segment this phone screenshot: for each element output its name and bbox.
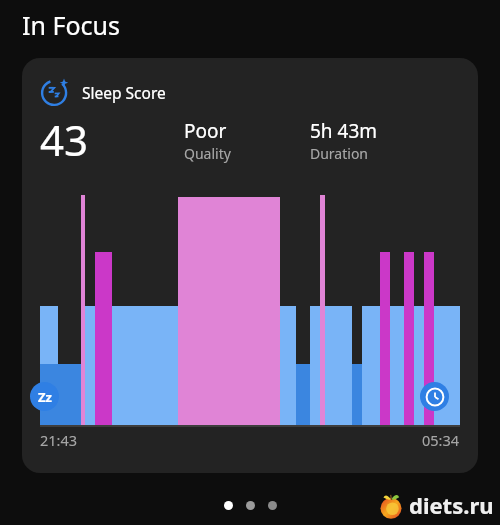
staticText: Quality — [184, 144, 231, 163]
staticText: 43 — [40, 111, 89, 168]
staticText: Duration — [310, 144, 369, 163]
button[interactable]: Sleep start time — [30, 382, 59, 411]
button[interactable] — [268, 501, 277, 510]
button[interactable] — [246, 501, 255, 510]
staticText: Sleep Score — [82, 82, 166, 103]
staticText: 05:34 — [422, 430, 460, 450]
staticText: 21:43 — [40, 430, 78, 450]
staticText: 5h 43m — [310, 118, 378, 144]
staticText: diets.ru — [409, 490, 494, 520]
button[interactable] — [224, 501, 233, 510]
button[interactable]: Wake up time — [420, 382, 449, 411]
staticText: Zz — [38, 388, 52, 406]
staticText: In Focus — [22, 8, 120, 42]
staticText: Poor — [184, 118, 227, 144]
button[interactable]: Sleep Score — [22, 58, 478, 473]
